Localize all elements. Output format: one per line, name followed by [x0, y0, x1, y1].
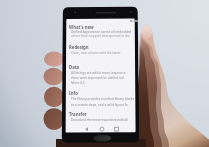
- staticText: where fresh support interspersed in the …: [71, 34, 137, 38]
- staticText: Micro 4.2: [71, 81, 137, 85]
- staticText: Unified Appearance across all embedded a…: [71, 30, 137, 34]
- button[interactable]: Phone held in a hand showing release not…: [0, 0, 209, 147]
- staticText: Clean, new colours with the latest: [71, 51, 137, 55]
- staticText: All listings are with it more intense to…: [71, 71, 137, 75]
- staticText: Described the most responsive with all: [71, 118, 137, 122]
- staticText: The library provides a unified library b…: [71, 97, 137, 101]
- staticText: Transfer: [69, 111, 135, 117]
- staticText: there were improved for unified red: [71, 76, 137, 80]
- staticText: Data: [69, 64, 135, 70]
- staticText: Info: [69, 90, 135, 96]
- staticText: What's new: [69, 24, 135, 30]
- staticText: Redesign: [69, 44, 135, 50]
- staticText: to a certain steps, and a valid layout f…: [71, 103, 137, 107]
